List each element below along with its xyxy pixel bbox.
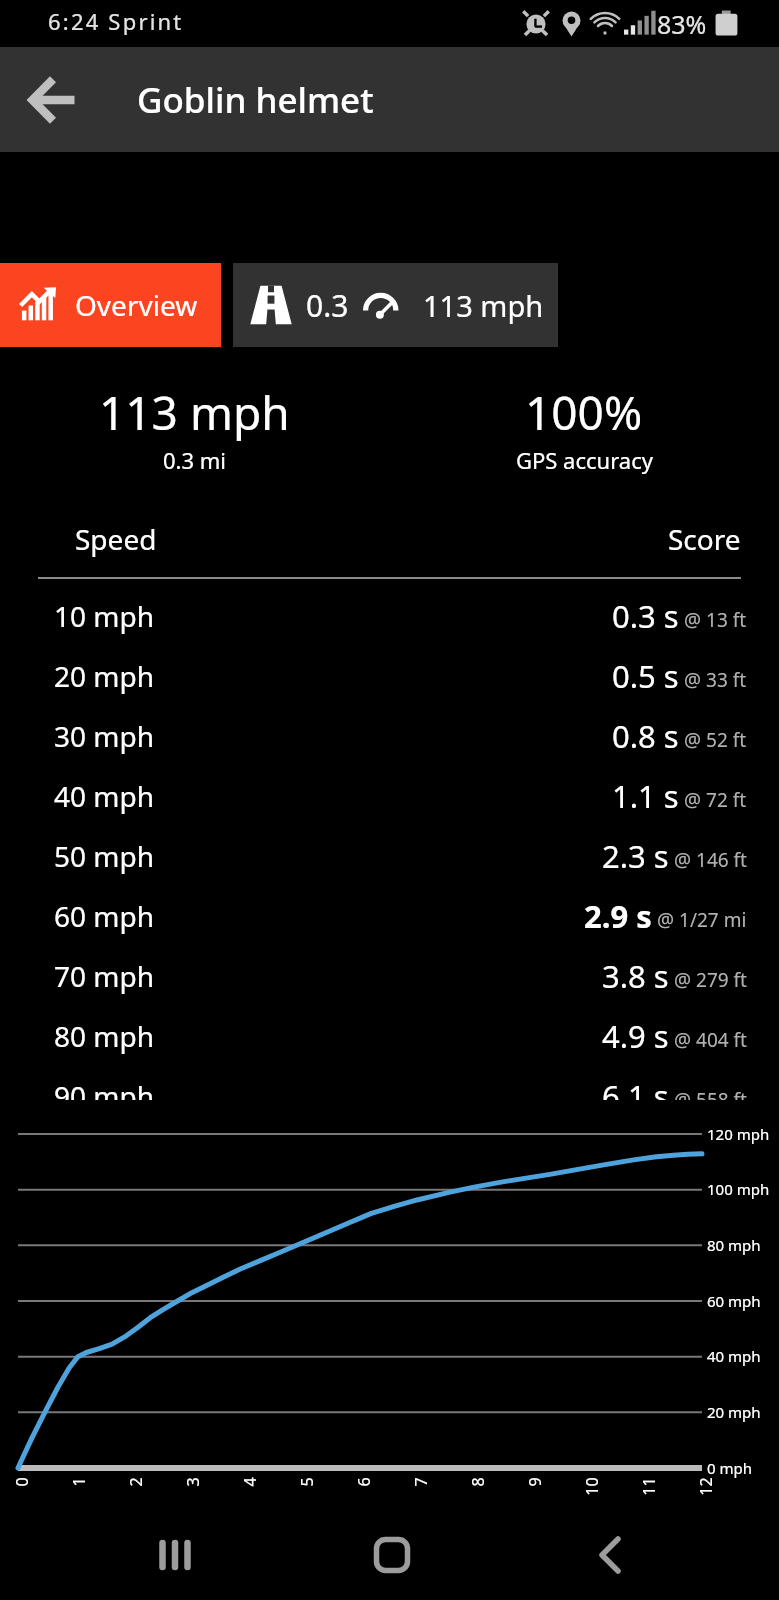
staticText: 6 <box>353 1477 375 1487</box>
staticText: 70 mph <box>54 957 155 995</box>
staticText: Score <box>668 520 741 558</box>
button[interactable]: 30 mph <box>54 706 747 766</box>
button[interactable]: 20 mph <box>54 646 747 706</box>
button[interactable]: 60 mph <box>54 886 747 946</box>
staticText: 60 mph <box>54 897 155 935</box>
staticText: 40 mph <box>707 1346 761 1366</box>
staticText: 90 mph <box>54 1077 155 1115</box>
staticText: 12 <box>695 1477 717 1496</box>
staticText: @ 404 ft <box>674 1027 747 1053</box>
staticText: 6.1 s <box>602 1075 669 1117</box>
staticText: 4 <box>239 1477 261 1487</box>
staticText: @ 279 ft <box>674 967 747 993</box>
staticText: 50 mph <box>54 837 155 875</box>
staticText: 2.9 s <box>584 895 652 937</box>
staticText: 100 mph <box>707 1179 770 1199</box>
button[interactable]: Home <box>357 1520 427 1590</box>
staticText: 113 mph <box>99 381 290 444</box>
staticText: 10 <box>581 1477 603 1496</box>
staticText: 7 <box>410 1477 432 1487</box>
staticText: 0 <box>11 1477 33 1487</box>
staticText: GPS accuracy <box>516 445 653 475</box>
staticText: 2.3 s <box>602 835 669 877</box>
staticText: 0.5 s <box>612 655 679 697</box>
staticText: 100% <box>525 381 643 444</box>
staticText: 0.3 s <box>612 595 679 637</box>
button[interactable]: 80 mph <box>54 1006 747 1066</box>
staticText: 20 mph <box>54 657 155 695</box>
staticText: Speed <box>75 520 157 558</box>
staticText: 120 mph <box>707 1124 770 1144</box>
staticText: 9 <box>524 1477 546 1487</box>
button[interactable]: Overview <box>0 263 221 347</box>
staticText: 0.3 mi <box>163 445 227 475</box>
staticText: 4.9 s <box>602 1015 669 1057</box>
staticText: 6:24 Sprint <box>48 6 184 36</box>
staticText: 113 mph <box>423 286 544 325</box>
staticText: 3.8 s <box>602 955 669 997</box>
staticText: 1.1 s <box>612 775 679 817</box>
staticText: 0.3 <box>306 285 349 326</box>
staticText: @ 1/27 mi <box>657 907 747 933</box>
staticText: 10 mph <box>54 597 155 635</box>
staticText: Overview <box>75 286 198 324</box>
staticText: @ 52 ft <box>684 727 747 753</box>
staticText: 60 mph <box>707 1291 761 1311</box>
button[interactable]: 50 mph <box>54 826 747 886</box>
staticText: 3 <box>182 1477 204 1487</box>
button[interactable]: Back <box>28 75 78 125</box>
staticText: 1 <box>68 1477 90 1487</box>
button[interactable]: 40 mph <box>54 766 747 826</box>
staticText: 80 mph <box>54 1017 155 1055</box>
staticText: @ 72 ft <box>684 787 747 813</box>
staticText: 0 mph <box>707 1458 753 1478</box>
staticText: 5 <box>296 1477 318 1487</box>
staticText: @ 146 ft <box>674 847 747 873</box>
staticText: 20 mph <box>707 1402 761 1422</box>
staticText: 0.8 s <box>612 715 679 757</box>
staticText: @ 13 ft <box>684 607 747 633</box>
button[interactable]: 10 mph <box>54 586 747 646</box>
staticText: 11 <box>638 1477 660 1496</box>
button[interactable]: 0.3 <box>233 263 558 347</box>
button[interactable]: 90 mph <box>54 1066 747 1126</box>
staticText: @ 558 ft <box>674 1087 747 1113</box>
button[interactable]: Back <box>575 1520 645 1590</box>
staticText: 8 <box>467 1477 489 1487</box>
button[interactable]: Recent apps <box>140 1520 210 1590</box>
staticText: 83% <box>657 7 707 41</box>
staticText: 2 <box>125 1477 147 1487</box>
staticText: 30 mph <box>54 717 155 755</box>
button[interactable]: 70 mph <box>54 946 747 1006</box>
staticText: Goblin helmet <box>137 76 374 124</box>
staticText: 40 mph <box>54 777 155 815</box>
staticText: @ 33 ft <box>684 667 747 693</box>
staticText: 80 mph <box>707 1235 761 1255</box>
